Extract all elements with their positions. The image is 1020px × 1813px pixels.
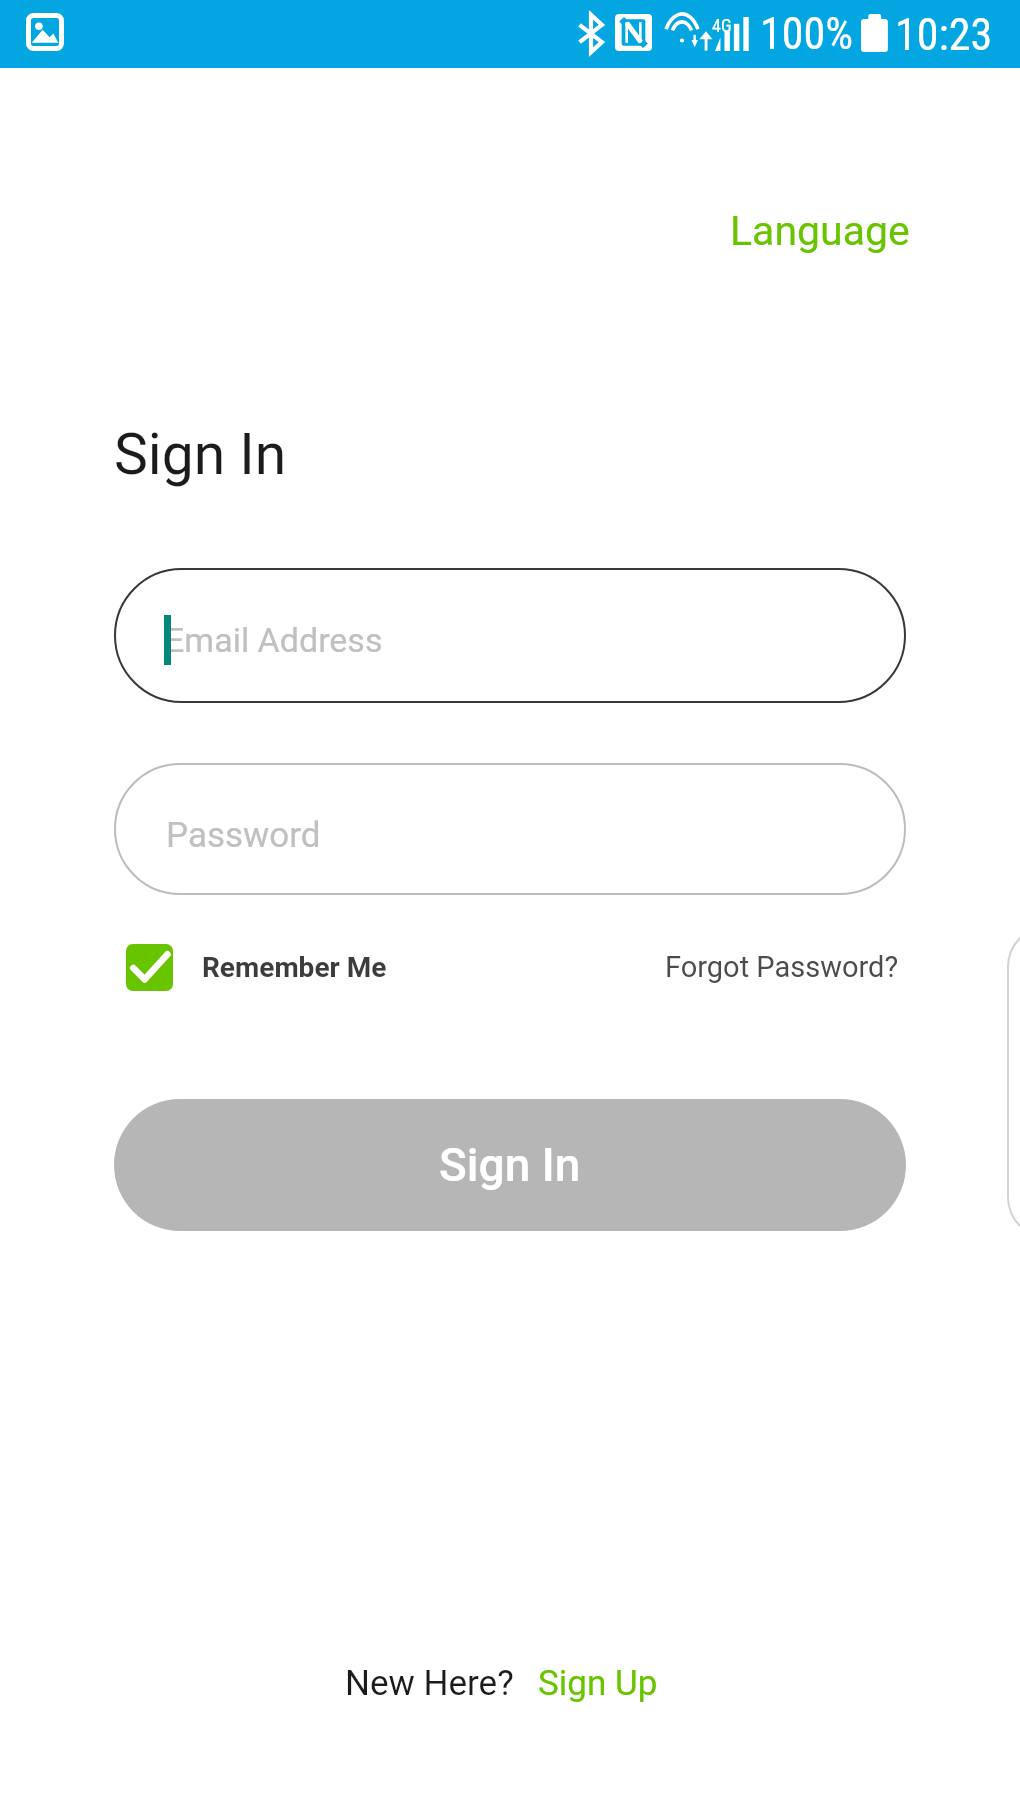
button[interactable]: Remember Me [126,944,387,991]
button[interactable]: Sign Up [538,1663,658,1704]
staticText: 10:23 [895,9,993,61]
staticText: Forgot Password? [665,950,899,984]
staticText: Remember Me [202,951,387,984]
button[interactable]: Email Address [114,568,906,703]
other: Screenshot [26,13,64,51]
staticText: Password [166,815,321,856]
button[interactable]: Password [114,763,906,895]
button[interactable]: Language [728,207,912,255]
button[interactable]: Sign In [114,1099,906,1231]
staticText: Sign Up [538,1663,658,1704]
staticText: 100% [760,8,854,60]
staticText: Sign In [114,421,287,488]
staticText: Language [730,207,910,255]
staticText: Email Address [165,620,383,660]
staticText: Sign In [439,1138,581,1192]
staticText: New Here? [345,1663,514,1704]
button[interactable]: Forgot Password? [661,944,903,990]
staticText: 4G [712,15,732,36]
